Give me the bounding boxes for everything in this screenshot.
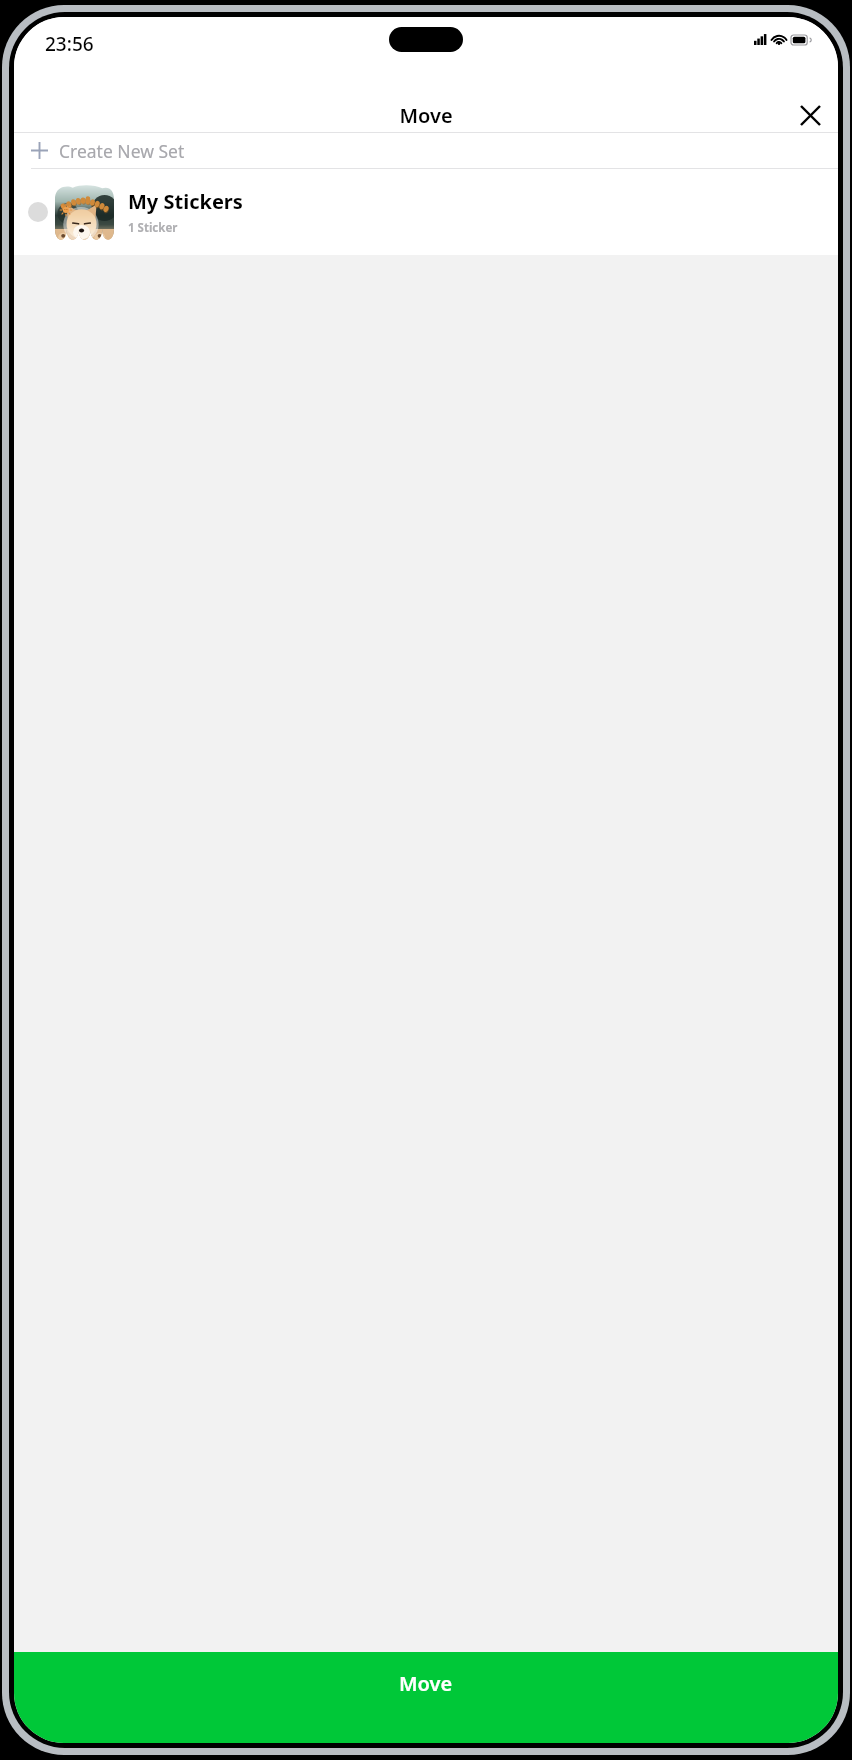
staticText: My Stickers xyxy=(128,188,243,215)
button[interactable]: Close xyxy=(792,99,828,132)
button[interactable]: Create New Set xyxy=(14,133,838,168)
staticText: 23:56 xyxy=(45,31,94,57)
staticText: Move xyxy=(399,1670,453,1697)
button[interactable]: Move xyxy=(14,1652,838,1743)
staticText: Move xyxy=(399,102,453,129)
staticText: Create New Set xyxy=(59,139,185,163)
button[interactable]: My Stickers xyxy=(14,169,838,255)
staticText: 1 Sticker xyxy=(128,220,178,236)
